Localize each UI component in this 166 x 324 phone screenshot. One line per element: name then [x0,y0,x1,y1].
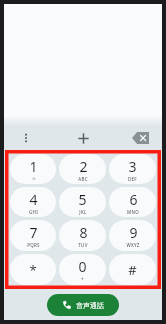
staticText: 5 [78,190,87,209]
staticText: 2 [79,157,88,176]
button[interactable]: 5 [59,187,106,217]
staticText: JKL [79,209,87,215]
button[interactable]: * [10,254,56,285]
staticText: 1 [29,157,38,176]
staticText: 8 [79,223,88,242]
staticText: 3 [128,157,137,176]
button[interactable]: Add plus [48,126,118,150]
button[interactable]: 2 [59,154,106,184]
staticText: 9 [129,223,138,242]
staticText: 音声通話 [76,301,104,310]
staticText: 4 [29,190,38,209]
button[interactable]: 1 [10,154,56,184]
staticText: GHI [29,209,38,215]
staticText: * [29,261,37,279]
staticText: 6 [129,190,138,209]
staticText: # [128,261,137,279]
staticText: 7 [29,223,38,242]
staticText: ABC [78,176,88,182]
staticText: PQRS [27,242,40,248]
staticText: TUV [78,242,88,248]
button[interactable]: 7 [10,220,56,251]
button[interactable]: 4 [10,187,56,217]
staticText: DEF [128,176,137,182]
button[interactable]: 3 [109,154,156,184]
staticText: WXYZ [126,242,140,248]
staticText: MNO [127,209,139,215]
button[interactable]: 8 [59,220,106,251]
button[interactable]: 9 [109,220,156,251]
button[interactable]: 6 [109,187,156,217]
button[interactable]: More options [4,126,48,150]
staticText: ∞ [32,176,36,181]
staticText: + [81,276,84,282]
button[interactable]: # [109,254,156,285]
staticText: 0 [78,257,87,276]
button[interactable]: Backspace [118,126,162,150]
button[interactable]: 0 [59,254,106,285]
button[interactable]: 音声通話 [47,294,119,316]
